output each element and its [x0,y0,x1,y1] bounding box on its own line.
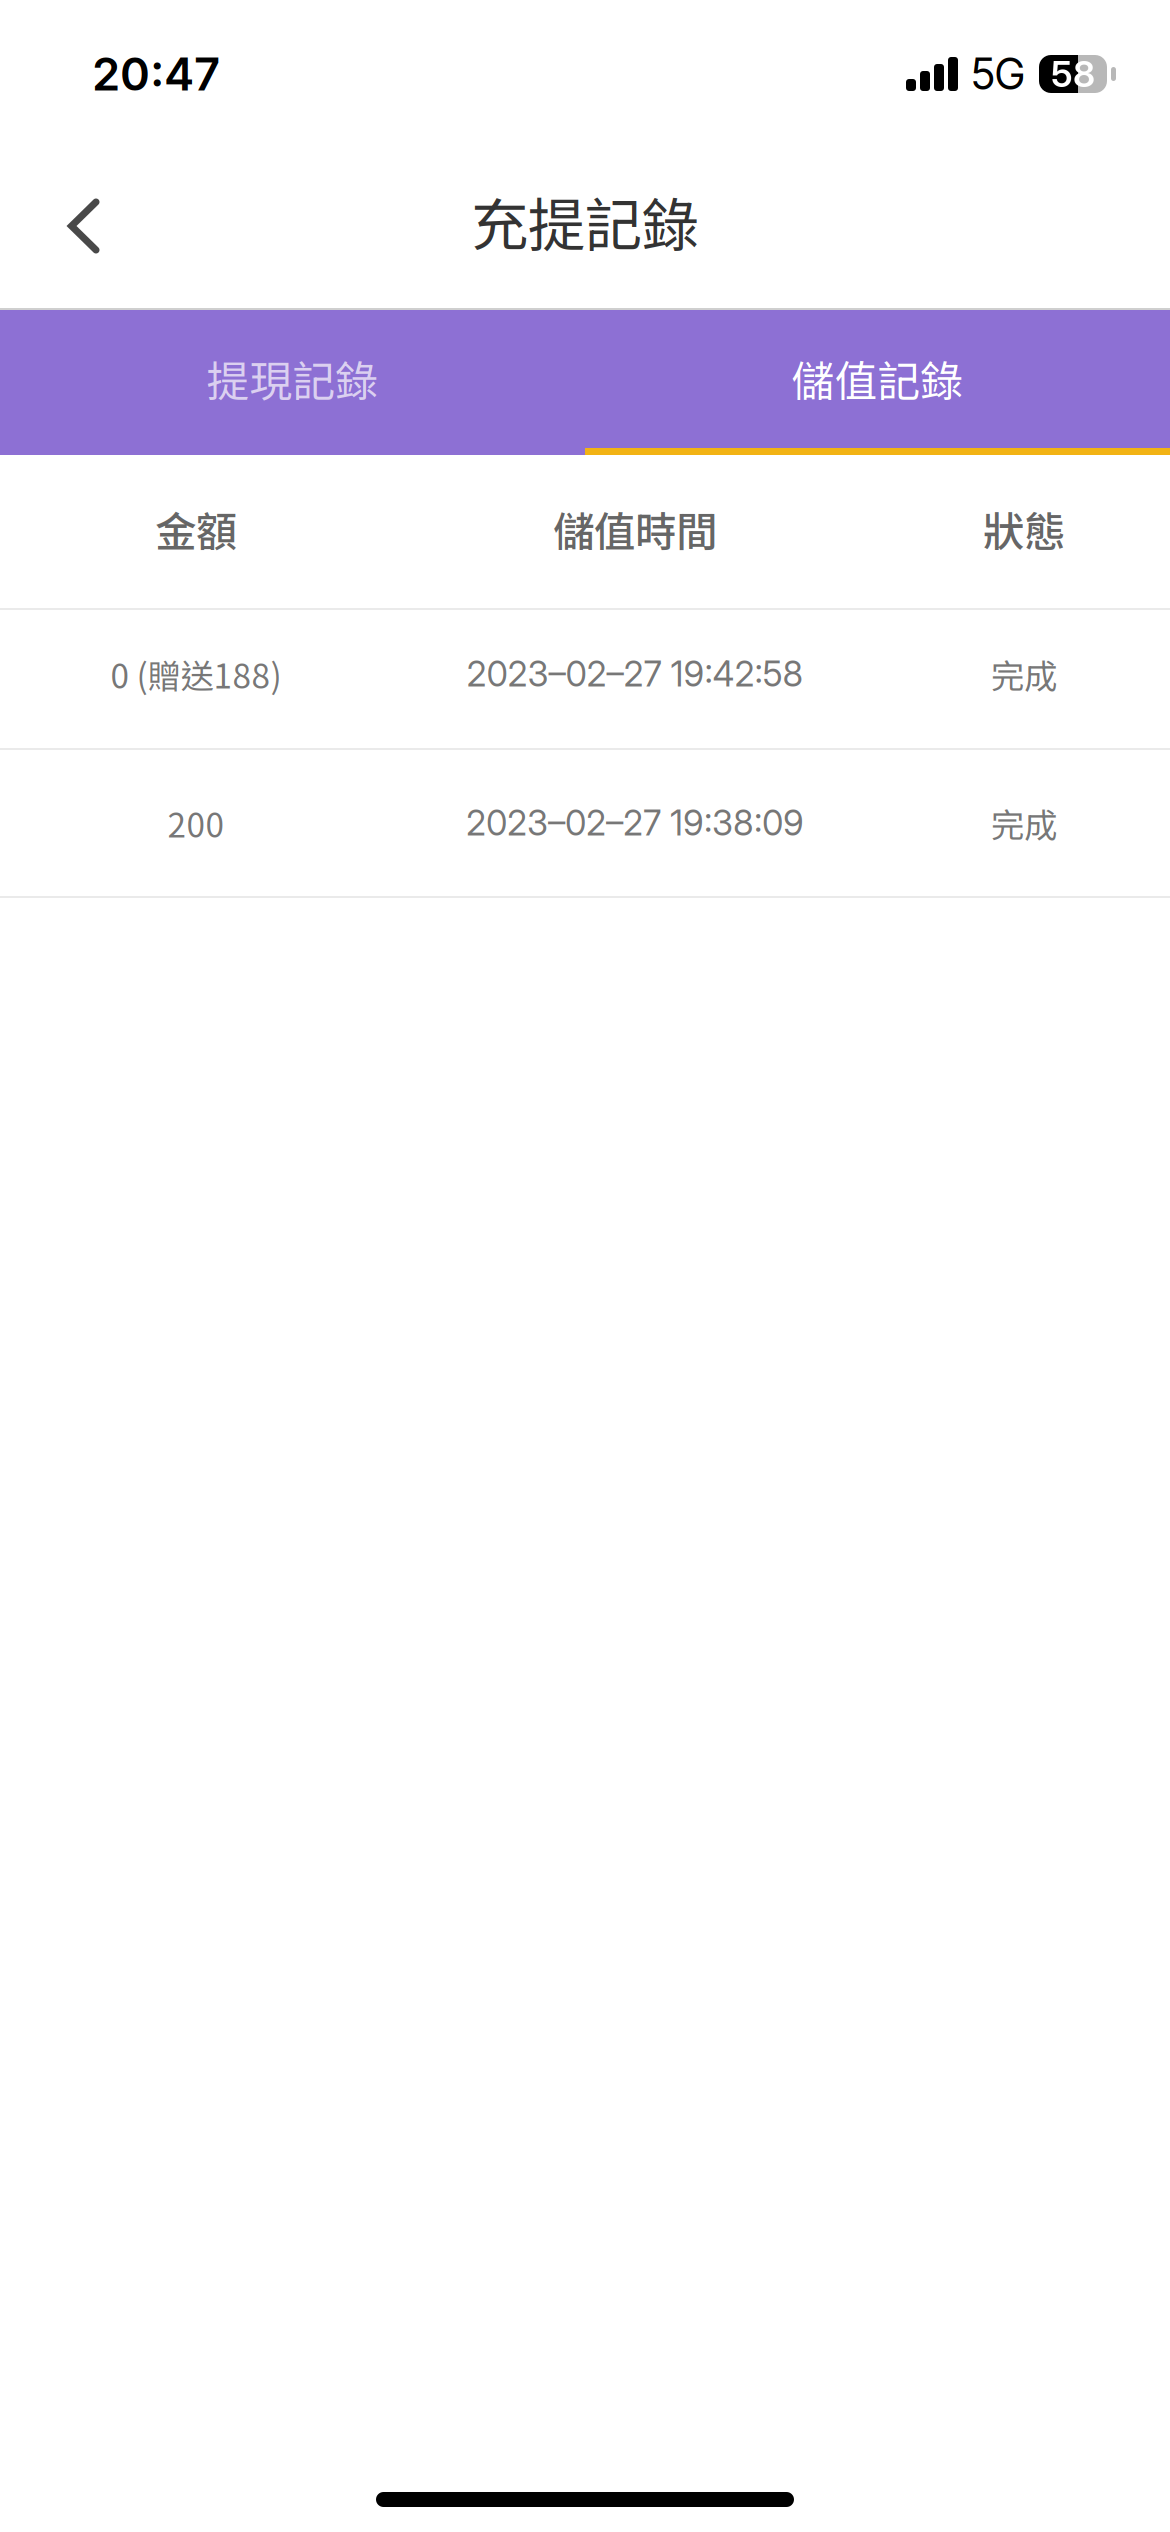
staticText: 完成 [991,650,1057,698]
staticText: 2023–02–27 19:42:58 [466,653,803,695]
staticText: 2023–02–27 19:38:09 [466,802,804,844]
staticText: 0 (贈送188) [110,650,281,698]
staticText: 儲值時間 [553,499,717,559]
button[interactable]: 200 [0,750,1170,896]
button[interactable]: 0 (贈送188) [0,610,1170,748]
staticText: 完成 [991,799,1057,847]
staticText: 200 [167,799,224,847]
staticText: 儲值記錄 [791,348,963,409]
staticText: 金額 [155,499,237,559]
staticText: 58 [1051,52,1095,96]
button[interactable]: 儲值記錄 [585,310,1170,455]
button[interactable]: Back [29,171,139,281]
staticText: 5G [971,48,1025,100]
staticText: 充提記錄 [471,179,699,262]
staticText: 提現記錄 [206,348,378,409]
staticText: 狀態 [983,499,1065,559]
button[interactable]: 提現記錄 [0,310,585,455]
staticText: 20:47 [92,47,220,101]
